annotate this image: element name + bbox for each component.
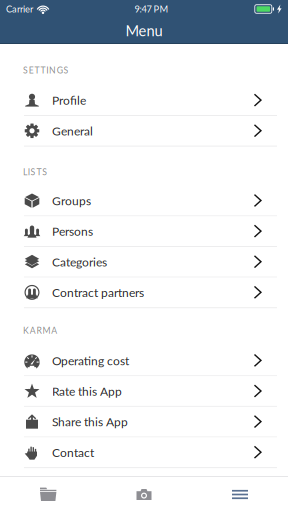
staticText: Menu [125,22,162,39]
button[interactable]: Contact [0,437,288,468]
staticText: KARMA [23,325,57,336]
staticText: Contract partners [52,285,144,300]
button[interactable]: Rate this App [0,376,288,407]
staticText: 9:47 PM [134,3,168,15]
button[interactable]: Share this App [0,407,288,437]
staticText: Profile [52,93,86,107]
button[interactable]: Persons [0,216,288,247]
button[interactable]: Contract partners [0,278,288,308]
staticText: Carrier [6,3,33,15]
staticText: Persons [52,224,93,238]
button[interactable]: Operating cost [0,346,288,376]
button[interactable]: Menu [0,18,288,43]
staticText: LISTS [23,167,47,177]
staticText: Rate this App [52,384,122,398]
button[interactable]: Groups [0,186,288,216]
button[interactable]: Camera [96,477,192,512]
button[interactable]: Profile [0,85,288,116]
button[interactable]: Files [0,477,96,512]
staticText: General [52,124,93,138]
staticText: Categories [52,255,107,269]
staticText: Groups [52,193,91,208]
staticText: Share this App [52,414,128,429]
button[interactable]: Menu [192,477,288,512]
staticText: SETTINGS [23,65,69,75]
button[interactable]: Categories [0,247,288,278]
staticText: Contact [52,445,94,459]
staticText: Operating cost [52,353,129,368]
button[interactable]: General [0,116,288,147]
